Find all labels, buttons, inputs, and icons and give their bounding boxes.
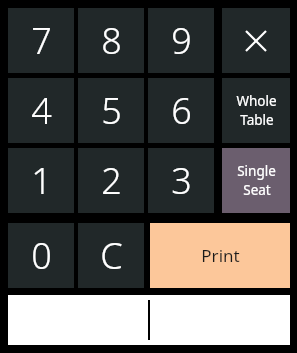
staticText: 9 [171,16,192,65]
staticText: 3 [171,156,192,205]
staticText: 6 [171,86,192,135]
button[interactable]: 8 [78,8,144,73]
button[interactable]: Close [222,8,290,73]
button[interactable]: Single [222,148,290,213]
button[interactable]: C [78,223,144,288]
staticText: 1 [31,156,52,205]
staticText: Print [201,244,240,267]
staticText: Table [240,111,274,129]
staticText: 0 [31,231,52,280]
button[interactable]: 1 [8,148,74,213]
button[interactable]: Input field [8,295,290,345]
button[interactable]: 7 [8,8,74,73]
staticText: C [100,231,123,280]
staticText: Whole [236,92,277,110]
button[interactable]: Whole [222,78,290,143]
button[interactable]: 9 [148,8,214,73]
button[interactable]: 2 [78,148,144,213]
staticText: Seat [243,181,271,199]
staticText: 8 [101,16,122,65]
staticText: Single [237,162,276,180]
staticText: 4 [31,86,52,135]
button[interactable]: 5 [78,78,144,143]
button[interactable]: 0 [8,223,74,288]
button[interactable]: Print [150,223,290,288]
button[interactable]: 6 [148,78,214,143]
button[interactable]: 3 [148,148,214,213]
button[interactable]: 4 [8,78,74,143]
staticText: 2 [101,156,122,205]
staticText: 5 [101,86,122,135]
staticText: 7 [31,16,52,65]
